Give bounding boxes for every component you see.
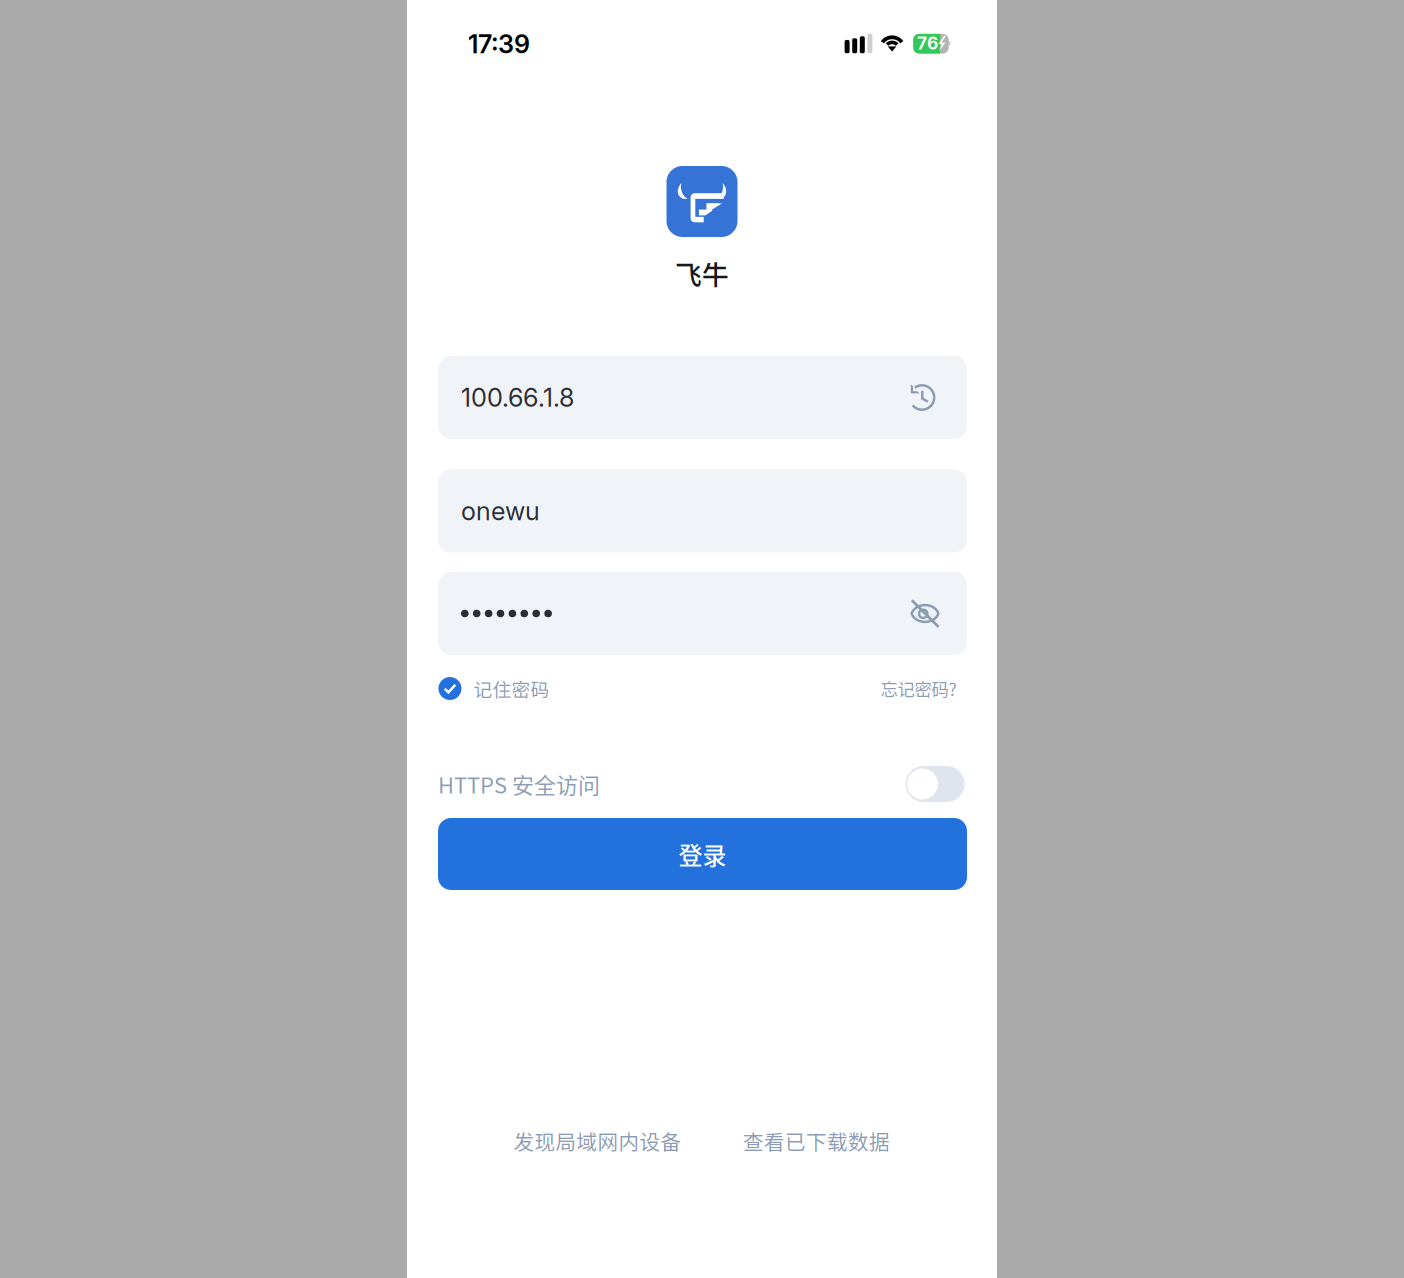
staticText: 记住密码 <box>473 675 549 702</box>
button[interactable]: Show password <box>905 572 945 655</box>
staticText: 100.66.1.8 <box>461 382 574 413</box>
staticText: 17:39 <box>468 29 530 59</box>
button[interactable]: 登录 <box>438 818 967 890</box>
button[interactable]: Recent servers <box>905 356 945 439</box>
button[interactable]: HTTPS secure access <box>905 766 967 802</box>
button[interactable]: 查看已下载数据 <box>743 1126 890 1156</box>
staticText: onewu <box>461 496 540 526</box>
staticText: 登录 <box>678 837 726 871</box>
button[interactable]: Password <box>461 572 552 655</box>
staticText: 76 <box>917 33 938 54</box>
staticText: HTTPS 安全访问 <box>438 768 600 800</box>
button[interactable]: 100.66.1.8 <box>461 356 574 439</box>
button[interactable]: 发现局域网内设备 <box>513 1126 681 1156</box>
button[interactable]: 记住密码 <box>438 675 549 702</box>
staticText: 飞牛 <box>675 254 729 292</box>
button[interactable]: onewu <box>438 469 967 552</box>
staticText: 发现局域网内设备 <box>513 1126 681 1156</box>
staticText: 忘记密码? <box>880 676 956 701</box>
button[interactable]: 忘记密码? <box>880 676 956 701</box>
staticText: 查看已下载数据 <box>743 1126 890 1156</box>
